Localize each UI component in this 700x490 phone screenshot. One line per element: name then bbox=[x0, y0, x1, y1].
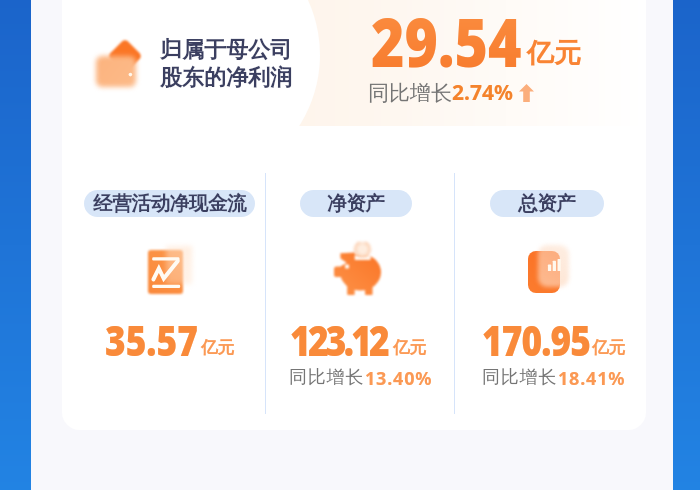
staticText: 归属于母公司 bbox=[160, 36, 292, 64]
button[interactable]: 净资产 bbox=[300, 190, 412, 217]
staticText: 亿元 bbox=[527, 36, 581, 70]
staticText: 29.54 bbox=[371, 0, 522, 87]
staticText: 经营活动净现金流 bbox=[93, 191, 247, 216]
staticText: 13.40% bbox=[365, 366, 433, 391]
staticText: 同比增长 bbox=[482, 366, 558, 389]
staticText: 总资产 bbox=[518, 191, 576, 216]
staticText: 18.41% bbox=[558, 366, 626, 391]
button[interactable]: 经营活动净现金流 bbox=[84, 190, 255, 217]
staticText: 股东的净利润 bbox=[160, 64, 292, 92]
staticText: 亿元 bbox=[393, 337, 427, 358]
staticText: 净资产 bbox=[327, 191, 385, 216]
staticText: 123.12 bbox=[290, 311, 387, 368]
staticText: 2.74% bbox=[452, 78, 513, 107]
staticText: 同比增长 bbox=[289, 366, 365, 389]
staticText: 35.57 bbox=[105, 311, 198, 368]
staticText: 同比增长 bbox=[368, 80, 452, 106]
staticText: 170.95 bbox=[482, 311, 590, 368]
staticText: 亿元 bbox=[201, 337, 235, 358]
button[interactable]: 总资产 bbox=[490, 190, 604, 217]
staticText: 亿元 bbox=[592, 337, 626, 358]
